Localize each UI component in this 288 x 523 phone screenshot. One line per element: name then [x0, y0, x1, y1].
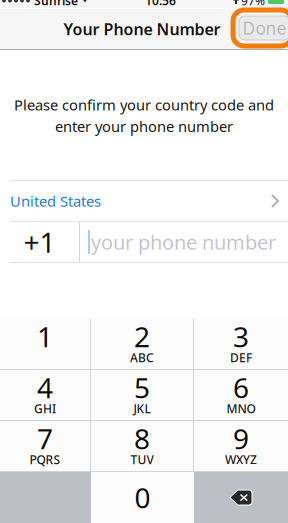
staticText: MNO [226, 400, 255, 416]
staticText: 5 [134, 369, 150, 406]
staticText: 8 [134, 420, 150, 457]
staticText: enter your phone number [55, 116, 233, 136]
button[interactable]: 0 [91, 472, 194, 523]
staticText: 3 [233, 318, 249, 355]
button[interactable]: Done [233, 10, 288, 46]
staticText: TUV [130, 451, 153, 467]
button[interactable]: 6 [194, 370, 288, 420]
staticText: Done [242, 16, 286, 39]
staticText: PQRS [29, 451, 60, 467]
staticText: Your Phone Number [63, 18, 220, 40]
staticText: JKL [133, 400, 150, 416]
staticText: 7 [37, 420, 53, 457]
button[interactable]: 1 [0, 319, 90, 369]
button[interactable]: 5 [91, 370, 193, 420]
button[interactable]: 7 [0, 421, 90, 471]
button[interactable]: 3 [194, 319, 288, 369]
staticText: +1 [23, 223, 55, 261]
staticText: 0 [134, 479, 150, 516]
staticText: 10:56 [145, 0, 176, 8]
staticText: United States [10, 191, 101, 211]
staticText: 4 [37, 369, 53, 406]
staticText: WXYZ [225, 451, 257, 467]
staticText: 6 [233, 369, 249, 406]
button[interactable]: 9 [194, 421, 288, 471]
staticText: 9 [233, 420, 249, 457]
staticText: 1 [37, 318, 53, 355]
button[interactable]: 2 [91, 319, 193, 369]
staticText: 2 [134, 318, 150, 355]
staticText: GHI [34, 400, 56, 416]
staticText: ABC [130, 349, 154, 365]
staticText: your phone number [91, 229, 276, 255]
staticText: Sunrise [34, 0, 78, 8]
staticText: 97% [241, 0, 265, 8]
button[interactable]: United States [0, 181, 288, 221]
button[interactable]: 4 [0, 370, 90, 420]
staticText: DEF [230, 349, 252, 365]
button[interactable]: 8 [91, 421, 193, 471]
button[interactable]: Delete [194, 472, 288, 523]
staticText: Please confirm your country code and [14, 95, 274, 114]
